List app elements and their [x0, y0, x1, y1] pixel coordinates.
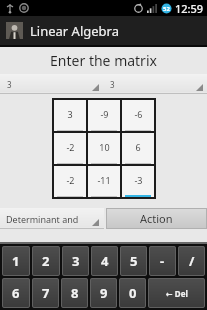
button[interactable]: 7 [32, 278, 59, 308]
button[interactable]: 6 [122, 133, 154, 164]
button[interactable]: -2 [54, 166, 86, 197]
staticText: 6 [12, 284, 20, 302]
button[interactable]: 3 [0, 74, 103, 94]
staticText: - [160, 252, 165, 270]
button[interactable]: 6 [2, 278, 30, 308]
staticText: Determinant and [6, 213, 79, 225]
staticText: 5 [130, 252, 138, 270]
button[interactable]: Linear Algebra [0, 16, 207, 45]
button[interactable]: - [149, 246, 176, 276]
button[interactable]: 9 [90, 278, 117, 308]
staticText: 3 [7, 79, 12, 90]
staticText: -2 [66, 141, 75, 153]
button[interactable]: 2 [32, 246, 60, 276]
button[interactable]: / [178, 246, 205, 276]
staticText: 12:59 [175, 1, 204, 16]
staticText: 4 [101, 252, 109, 270]
staticText: -3 [134, 174, 143, 186]
staticText: -6 [134, 108, 143, 120]
button[interactable]: 8 [61, 278, 88, 308]
staticText: 3 [110, 79, 115, 90]
staticText: 0 [129, 284, 137, 302]
staticText: Enter the matrix [0, 51, 207, 70]
button[interactable]: -6 [122, 100, 154, 131]
staticText: 1 [12, 252, 20, 270]
button[interactable]: -9 [88, 100, 120, 131]
staticText: -11 [97, 174, 111, 186]
staticText: Linear Algebra [30, 22, 119, 40]
staticText: 3 [72, 252, 80, 270]
staticText: -9 [100, 108, 109, 120]
button[interactable]: -3 [122, 166, 154, 197]
staticText: 7 [42, 284, 50, 302]
button[interactable]: -11 [88, 166, 120, 197]
staticText: ← Del [166, 288, 188, 299]
staticText: 10 [99, 141, 110, 153]
button[interactable]: Action [106, 208, 207, 229]
staticText: 9 [100, 284, 108, 302]
button[interactable]: 1 [2, 246, 30, 276]
staticText: 52 [163, 5, 170, 13]
button[interactable]: ← Del [148, 278, 205, 308]
staticText: 2 [42, 252, 50, 270]
staticText: 6 [135, 141, 141, 153]
staticText: 8 [71, 284, 79, 302]
staticText: -2 [66, 174, 75, 186]
button[interactable]: 3 [54, 100, 86, 131]
button[interactable]: 3 [103, 74, 207, 94]
staticText: 3 [67, 108, 73, 120]
button[interactable]: Determinant and [0, 208, 104, 229]
button[interactable]: -2 [54, 133, 86, 164]
button[interactable]: 4 [91, 246, 118, 276]
button[interactable]: 3 [62, 246, 89, 276]
staticText: / [189, 252, 195, 270]
staticText: Action [140, 211, 173, 226]
button[interactable]: 10 [88, 133, 120, 164]
button[interactable]: 5 [120, 246, 147, 276]
button[interactable]: 0 [119, 278, 146, 308]
